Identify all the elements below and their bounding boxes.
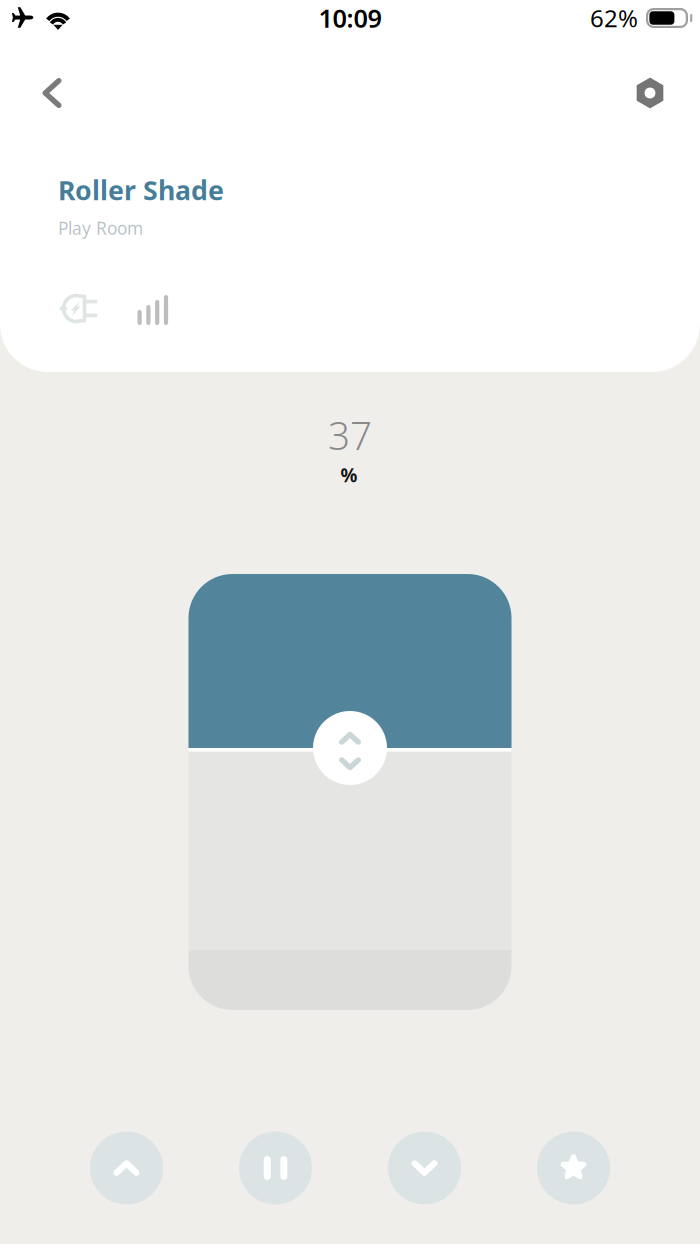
- button[interactable]: Open shade: [90, 1131, 163, 1204]
- button[interactable]: Close shade: [388, 1131, 461, 1204]
- button[interactable]: Back: [16, 61, 88, 125]
- button[interactable]: Settings: [614, 61, 686, 125]
- staticText: 62%: [590, 2, 638, 34]
- staticText: 37: [328, 409, 372, 461]
- button[interactable]: Stop: [239, 1131, 312, 1204]
- staticText: Roller Shade: [58, 172, 224, 208]
- staticText: Play Room: [58, 216, 143, 239]
- staticText: %: [340, 463, 357, 487]
- button[interactable]: Favourite: [537, 1131, 610, 1204]
- staticText: 10:09: [318, 1, 381, 35]
